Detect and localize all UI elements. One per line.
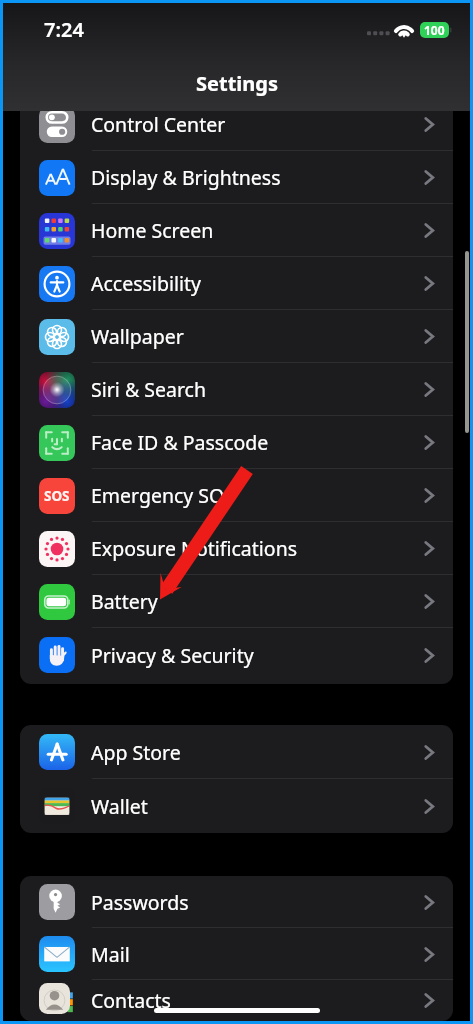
staticText: Contacts [91, 987, 171, 1014]
staticText: Siri & Search [91, 376, 206, 403]
staticText: Settings [196, 70, 278, 97]
staticText: App Store [91, 739, 181, 766]
staticText: Wallet [91, 793, 148, 820]
staticText: Display & Brightness [91, 164, 281, 191]
button[interactable]: Passwords [20, 876, 453, 928]
button[interactable]: SOS [20, 469, 453, 522]
button[interactable]: Display & Brightness [20, 151, 453, 204]
staticText: Passwords [91, 889, 189, 916]
button[interactable]: Control Center [20, 98, 453, 151]
button[interactable]: Battery [20, 575, 453, 628]
button[interactable]: App Store [20, 725, 453, 779]
staticText: Exposure Notifications [91, 535, 298, 562]
staticText: Battery [91, 588, 158, 615]
staticText: Mail [91, 941, 130, 968]
button[interactable]: Mail [20, 928, 453, 980]
staticText: SOS [44, 487, 70, 505]
button[interactable]: Contacts [20, 980, 453, 1021]
button[interactable]: Siri & Search [20, 363, 453, 416]
staticText: Control Center [91, 111, 226, 138]
button[interactable]: Privacy & Security [20, 628, 453, 682]
button[interactable]: Face ID & Passcode [20, 416, 453, 469]
staticText: 100 [424, 22, 445, 38]
staticText: Accessibility [91, 270, 201, 297]
button[interactable]: Wallet [20, 779, 453, 833]
button[interactable]: Exposure Notifications [20, 522, 453, 575]
button[interactable]: Wallpaper [20, 310, 453, 363]
button[interactable]: Accessibility [20, 257, 453, 310]
staticText: Face ID & Passcode [91, 429, 269, 456]
staticText: Privacy & Security [91, 642, 254, 669]
staticText: Home Screen [91, 217, 214, 244]
staticText: 7:24 [44, 16, 84, 43]
button[interactable]: Home Screen [20, 204, 453, 257]
staticText: Emergency SOS [91, 482, 235, 509]
staticText: Wallpaper [91, 323, 184, 350]
